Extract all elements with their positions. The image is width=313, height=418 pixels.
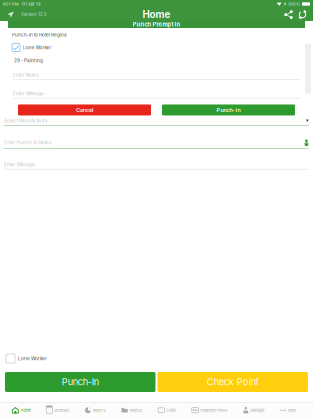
staticText: Enter Punch-In Notes <box>4 140 51 145</box>
staticText: More <box>288 408 296 413</box>
staticText: 100% <box>288 2 300 6</box>
button[interactable]: Employee Profile <box>192 402 227 418</box>
staticText: Home <box>20 408 30 413</box>
button[interactable]: Cancel <box>18 104 151 115</box>
staticText: Check Point <box>207 376 259 387</box>
staticText: Schedule <box>54 408 69 413</box>
button[interactable]: Reports <box>85 402 106 418</box>
button[interactable]: Punch-In <box>5 372 155 392</box>
staticText: Fri Apr 19 <box>22 2 40 6</box>
button[interactable]: Manager <box>243 402 264 418</box>
button[interactable]: Chats <box>158 402 176 418</box>
staticText: 6:01 PM <box>3 2 19 6</box>
button[interactable]: Schedule <box>46 402 69 418</box>
button[interactable]: Home <box>12 402 30 418</box>
staticText: Employee Profile <box>200 408 227 413</box>
staticText: Punch-In <box>62 376 99 387</box>
staticText: Version 12.5 <box>21 12 47 17</box>
staticText: Select Work Activity <box>4 118 48 123</box>
button[interactable]: Share <box>284 10 293 19</box>
button[interactable]: Refresh <box>298 10 307 19</box>
staticText: 29 - Painting <box>14 58 43 63</box>
staticText: Punch-In to Hotel Regina <box>12 32 67 38</box>
button[interactable]: Check Point <box>157 372 308 392</box>
staticText: Punch Prompt In <box>132 21 180 28</box>
staticText: Manager <box>250 408 264 413</box>
button[interactable]: Punch-In <box>162 104 295 115</box>
button[interactable]: More <box>280 402 296 418</box>
staticText: Cancel <box>76 107 93 113</box>
staticText: Enter Notes <box>13 72 38 78</box>
staticText: Chats <box>166 408 176 413</box>
staticText: Lone Worker <box>22 45 51 50</box>
staticText: Enter Mileage <box>13 91 44 96</box>
staticText: Lone Worker <box>18 356 47 361</box>
staticText: Enter Mileage <box>4 162 35 167</box>
staticText: Reports <box>93 408 106 413</box>
staticText: Projects <box>129 408 142 413</box>
staticText: Punch-In <box>216 107 240 113</box>
staticText: Home <box>142 8 170 20</box>
button[interactable]: Projects <box>121 402 142 418</box>
